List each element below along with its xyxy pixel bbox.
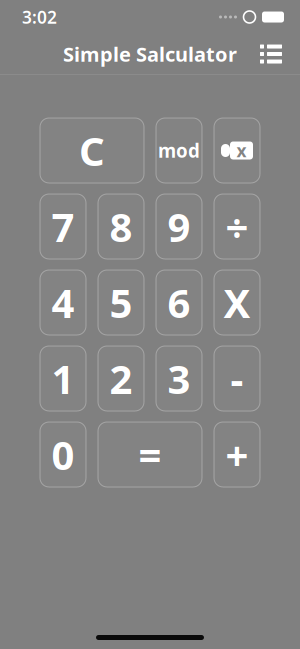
staticText: 5 [109,276,132,329]
button[interactable]: 2 [98,346,144,411]
button[interactable]: 7 [40,194,86,259]
staticText: X [223,276,250,329]
button[interactable]: - [214,346,260,411]
button[interactable]: 9 [156,194,202,259]
button[interactable]: C [40,118,144,183]
staticText: = [138,428,161,481]
button[interactable]: ÷ [214,194,260,259]
button[interactable]: mod [156,118,202,183]
button[interactable]: 0 [40,422,86,487]
button[interactable]: = [98,422,202,487]
staticText: 3 [167,352,190,405]
staticText: x [236,139,246,162]
staticText: 9 [167,200,190,253]
staticText: 0 [51,428,74,481]
staticText: 1 [51,352,74,405]
button[interactable]: 5 [98,270,144,335]
staticText: 4 [51,276,74,329]
staticText: 3:02 [22,5,57,28]
staticText: ÷ [225,200,248,253]
staticText: Simple Salculator [63,41,237,67]
button[interactable]: 6 [156,270,202,335]
button[interactable]: 8 [98,194,144,259]
button[interactable]: 1 [40,346,86,411]
staticText: - [230,352,243,405]
button[interactable]: X [214,270,260,335]
button[interactable]: 3 [156,346,202,411]
staticText: 2 [109,352,132,405]
staticText: 6 [167,276,190,329]
button[interactable]: + [214,422,260,487]
staticText: mod [158,138,200,163]
button[interactable]: 4 [40,270,86,335]
staticText: C [79,124,105,177]
staticText: 8 [109,200,132,253]
staticText: 7 [51,200,74,253]
staticText: + [225,428,248,481]
button[interactable]: Menu [256,39,286,69]
button[interactable]: Delete [214,118,260,183]
